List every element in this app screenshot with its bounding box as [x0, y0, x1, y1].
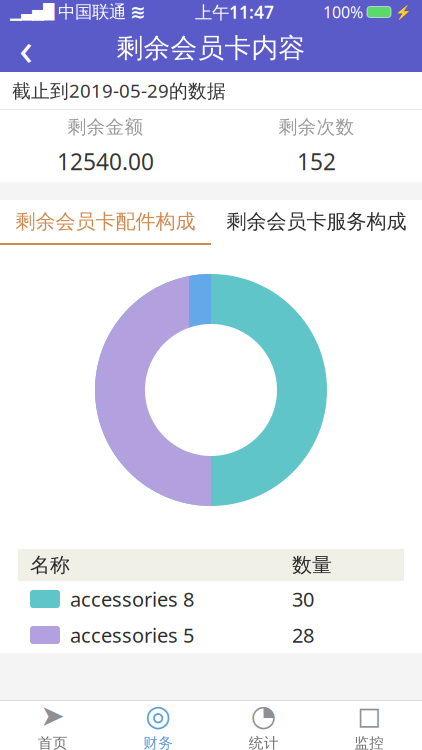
staticText: 剩余会员卡内容: [116, 32, 305, 64]
staticText: 152: [297, 146, 336, 176]
staticText: accessories 5: [70, 622, 194, 648]
staticText: ‹: [19, 18, 33, 78]
button[interactable]: 剩余会员卡服务构成: [211, 200, 422, 245]
staticText: ⚡: [395, 4, 412, 20]
staticText: 中国联通: [58, 1, 126, 23]
staticText: 12540.00: [57, 146, 154, 176]
staticText: 剩余会员卡服务构成: [226, 209, 406, 234]
button[interactable]: ➤: [0, 701, 105, 750]
staticText: 剩余次数: [278, 115, 354, 138]
staticText: 剩余金额: [67, 115, 143, 138]
staticText: 上午11:47: [195, 0, 274, 23]
button[interactable]: 剩余会员卡配件构成: [0, 200, 211, 245]
staticText: 名称: [30, 553, 70, 577]
staticText: ▁▃▅█: [10, 4, 54, 20]
staticText: ◎: [145, 699, 171, 732]
button[interactable]: ◎: [105, 701, 211, 750]
staticText: 监控: [354, 734, 384, 750]
button[interactable]: ◔: [211, 701, 316, 750]
staticText: 首页: [38, 734, 68, 750]
staticText: ➤: [40, 699, 65, 732]
staticText: 财务: [143, 734, 173, 750]
staticText: 30: [292, 586, 314, 612]
staticText: 28: [292, 622, 314, 648]
staticText: 剩余会员卡配件构成: [15, 209, 195, 234]
staticText: 统计: [249, 734, 279, 750]
staticText: ◻: [357, 699, 381, 732]
staticText: ≋: [130, 1, 146, 23]
staticText: ◔: [251, 699, 277, 732]
staticText: 100%: [323, 1, 363, 23]
button[interactable]: ◻: [316, 701, 422, 750]
staticText: 截止到2019-05-29的数据: [12, 78, 226, 103]
button[interactable]: Back: [0, 24, 52, 72]
staticText: accessories 8: [70, 586, 194, 612]
staticText: 数量: [292, 553, 332, 577]
